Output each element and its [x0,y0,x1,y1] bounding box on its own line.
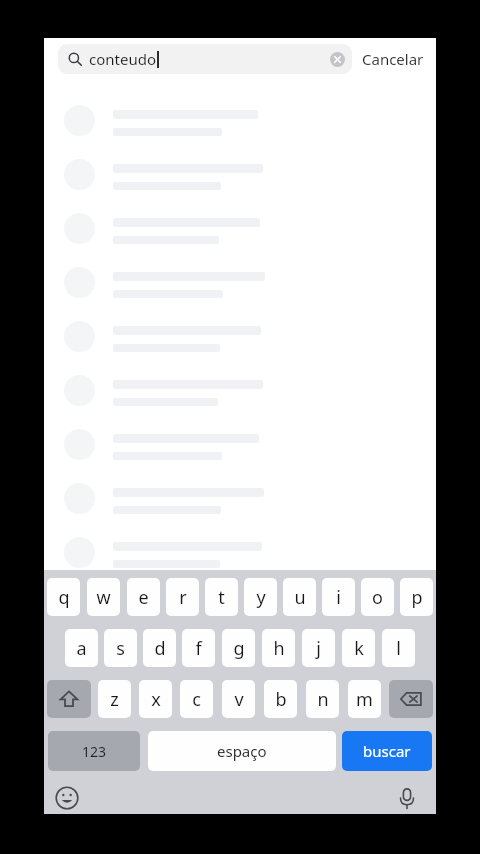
button[interactable]: k [342,629,375,667]
staticText: Cancelar [362,49,424,69]
button[interactable]: q [47,578,80,616]
button[interactable]: m [348,680,381,718]
button[interactable]: t [205,578,238,616]
button[interactable]: y [244,578,277,616]
button[interactable]: buscar [342,731,432,771]
button[interactable]: o [361,578,394,616]
button[interactable]: Shift [47,680,91,718]
button[interactable] [44,157,436,211]
staticText: p [411,585,423,610]
staticText: 123 [82,742,107,761]
button[interactable]: i [322,578,355,616]
staticText: n [317,687,329,712]
button[interactable] [44,427,436,481]
staticText: k [354,636,364,661]
button[interactable] [44,211,436,265]
staticText: x [151,687,161,712]
button[interactable] [44,535,436,570]
button[interactable]: u [283,578,316,616]
staticText: w [96,585,111,610]
staticText: conteudo [89,49,156,69]
button[interactable]: w [87,578,120,616]
button[interactable]: f [182,629,215,667]
staticText: u [294,585,306,610]
button[interactable]: 123 [48,731,140,771]
button[interactable]: v [222,680,255,718]
button[interactable]: Limpar [324,46,350,72]
button[interactable] [44,265,436,319]
button[interactable]: b [264,680,297,718]
button[interactable]: z [98,680,131,718]
button[interactable]: Cancelar [352,38,434,80]
button[interactable] [44,103,436,157]
staticText: f [195,636,202,661]
button[interactable]: l [382,629,415,667]
button[interactable]: g [222,629,255,667]
staticText: z [110,687,119,712]
staticText: e [138,585,149,610]
staticText: buscar [363,741,411,761]
button[interactable] [44,373,436,427]
button[interactable]: e [127,578,160,616]
button[interactable]: j [302,629,335,667]
staticText: i [336,585,341,610]
staticText: c [192,687,201,712]
staticText: g [233,636,245,661]
staticText: y [256,585,266,610]
button[interactable]: d [143,629,176,667]
button[interactable] [44,319,436,373]
button[interactable]: conteudo [58,44,352,74]
button[interactable]: espaço [148,731,336,771]
staticText: m [356,687,373,712]
button[interactable]: s [104,629,137,667]
button[interactable]: x [139,680,172,718]
staticText: q [58,585,70,610]
staticText: r [179,585,187,610]
staticText: b [275,687,287,712]
staticText: h [273,636,285,661]
staticText: l [396,636,401,661]
button[interactable]: a [65,629,98,667]
button[interactable]: Emoji [48,781,86,814]
staticText: o [372,585,383,610]
staticText: espaço [217,741,267,761]
button[interactable] [44,481,436,535]
staticText: s [116,636,125,661]
staticText: a [76,636,87,661]
staticText: v [234,687,244,712]
button[interactable]: n [306,680,339,718]
button[interactable]: Ditado por voz [388,781,426,814]
button[interactable]: c [180,680,213,718]
button[interactable]: h [262,629,295,667]
staticText: t [218,585,225,610]
staticText: j [316,636,321,661]
button[interactable]: Apagar [389,680,433,718]
button[interactable]: p [400,578,433,616]
staticText: d [154,636,166,661]
button[interactable]: r [166,578,199,616]
